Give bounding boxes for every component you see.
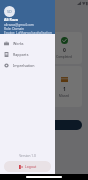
staticText: SD xyxy=(7,9,12,14)
button[interactable]: 2 xyxy=(6,32,42,64)
button[interactable]: 0 xyxy=(46,32,82,64)
button[interactable]: Imprelsation xyxy=(0,60,55,71)
staticText: Missed xyxy=(59,94,69,98)
staticText: Version 1.0 xyxy=(0,154,55,158)
button[interactable]: Rapports xyxy=(0,49,55,60)
staticText: Works xyxy=(13,41,24,46)
button[interactable]: Logout xyxy=(4,161,51,172)
staticText: Equipe: Lufthansa/capitalisation xyxy=(4,31,52,34)
staticText: Role: Domain xyxy=(4,27,25,31)
button[interactable]: Works xyxy=(0,38,55,49)
staticText: 0 xyxy=(63,47,66,54)
staticText: Completed xyxy=(56,55,72,59)
staticText: alirazas@gmail.com xyxy=(4,23,34,27)
staticText: Total xyxy=(21,55,28,59)
staticText: 1 xyxy=(63,86,66,93)
button[interactable]: Start xyxy=(6,120,82,130)
staticText: Logout xyxy=(25,164,37,169)
staticText: Imprelsation xyxy=(13,63,35,68)
staticText: Rapports xyxy=(13,52,29,57)
staticText: 2 xyxy=(23,47,26,54)
button[interactable]: 1 xyxy=(46,66,82,107)
staticText: Ali Raza xyxy=(4,17,19,22)
button[interactable]: 1 xyxy=(6,66,42,107)
